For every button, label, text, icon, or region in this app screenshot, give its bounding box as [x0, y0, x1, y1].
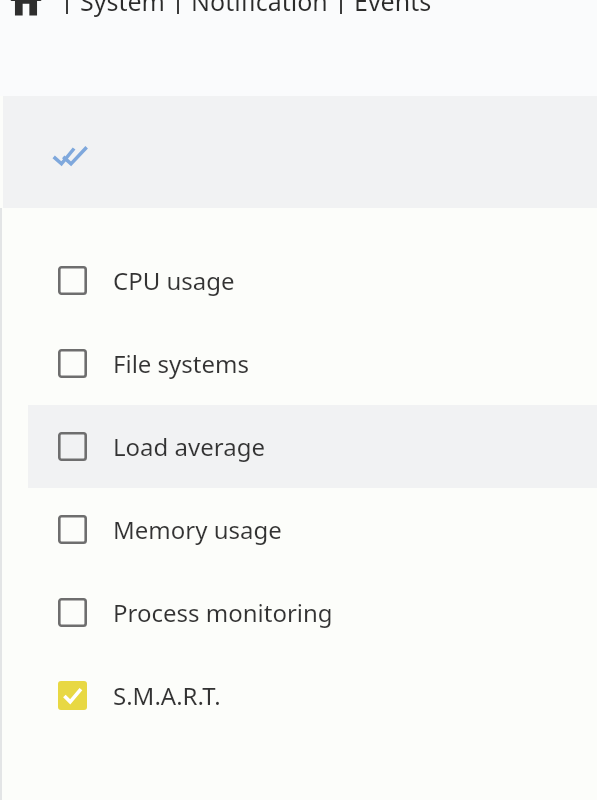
staticText: System [80, 0, 165, 18]
button[interactable]: Load average [0, 405, 597, 488]
button[interactable]: S.M.A.R.T. [0, 654, 597, 737]
button[interactable]: File systems [0, 322, 597, 405]
staticText: Process monitoring [113, 596, 333, 629]
button[interactable]: System [68, 0, 177, 24]
button[interactable]: Process monitoring [0, 571, 597, 654]
staticText: CPU usage [113, 264, 235, 297]
button[interactable]: Memory usage [0, 488, 597, 571]
staticText: Memory usage [113, 513, 282, 546]
button[interactable]: Home [8, 0, 44, 19]
button[interactable]: CPU usage [0, 239, 597, 322]
staticText: File systems [113, 347, 249, 380]
staticText: Events [354, 0, 432, 18]
staticText: Load average [113, 430, 265, 463]
button[interactable]: Notification [179, 0, 340, 24]
staticText: Notification [191, 0, 328, 18]
staticText: S.M.A.R.T. [113, 679, 221, 712]
button[interactable]: Select all [47, 132, 93, 178]
button[interactable]: Events [342, 0, 444, 24]
